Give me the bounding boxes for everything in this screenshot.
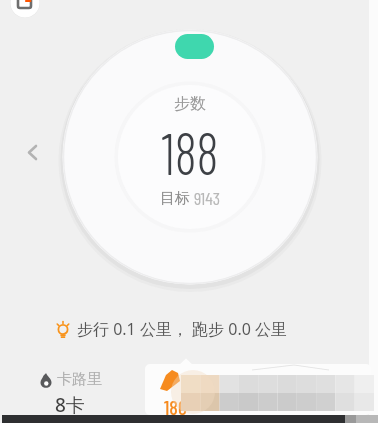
- button[interactable]: 卡路里: [30, 370, 110, 418]
- staticText: 步数: [174, 94, 206, 114]
- staticText: 卡路里: [57, 370, 102, 389]
- staticText: 目标: [160, 187, 194, 207]
- staticText: 8卡: [55, 392, 85, 418]
- staticText: 9143: [194, 187, 221, 207]
- button[interactable]: [145, 364, 371, 415]
- button[interactable]: 步行 0.1 公里， 跑步 0.0 公里: [54, 317, 287, 341]
- staticText: 188: [162, 116, 219, 176]
- button[interactable]: [10, 0, 40, 18]
- staticText: 180: [164, 395, 187, 419]
- button[interactable]: [20, 140, 46, 166]
- staticText: 步行 0.1 公里， 跑步 0.0 公里: [77, 318, 287, 340]
